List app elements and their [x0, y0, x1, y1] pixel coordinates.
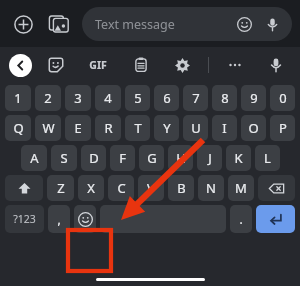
button[interactable]: GIF: [83, 52, 113, 78]
staticText: N: [206, 179, 216, 197]
staticText: E: [74, 119, 82, 137]
button[interactable]: H: [168, 145, 193, 171]
button[interactable]: X: [78, 175, 104, 201]
button[interactable]: Shift: [5, 175, 43, 201]
button[interactable]: Space: [100, 205, 226, 233]
staticText: 2: [44, 89, 52, 107]
button[interactable]: O: [241, 115, 266, 141]
button[interactable]: Backspace: [258, 175, 295, 201]
button[interactable]: 3: [65, 85, 91, 111]
button[interactable]: W: [35, 115, 61, 141]
staticText: V: [147, 179, 155, 197]
button[interactable]: U: [183, 115, 208, 141]
staticText: .: [239, 211, 243, 227]
staticText: 3: [74, 89, 82, 107]
button[interactable]: .: [230, 205, 252, 233]
button[interactable]: Emoji keyboard: [74, 205, 96, 233]
button[interactable]: 4: [95, 85, 121, 111]
button[interactable]: Q: [5, 115, 31, 141]
button[interactable]: B: [168, 175, 194, 201]
button[interactable]: ,: [48, 205, 70, 233]
button[interactable]: Y: [154, 115, 179, 141]
button[interactable]: E: [65, 115, 91, 141]
staticText: I: [222, 119, 227, 137]
staticText: O: [248, 119, 259, 137]
staticText: G: [147, 149, 157, 167]
staticText: 6: [163, 89, 171, 107]
staticText: C: [117, 179, 126, 197]
staticText: H: [176, 149, 186, 167]
button[interactable]: Emoji: [232, 12, 256, 36]
staticText: P: [279, 119, 287, 137]
staticText: Z: [57, 179, 65, 197]
button[interactable]: J: [197, 145, 222, 171]
button[interactable]: K: [226, 145, 251, 171]
staticText: Y: [163, 119, 171, 137]
button[interactable]: 7: [183, 85, 208, 111]
button[interactable]: R: [95, 115, 121, 141]
button[interactable]: Text message: [82, 7, 292, 41]
staticText: Text message: [95, 16, 175, 33]
staticText: 9: [250, 89, 258, 107]
button[interactable]: Enter: [256, 205, 295, 233]
button[interactable]: F: [110, 145, 135, 171]
staticText: F: [119, 149, 126, 167]
button[interactable]: 2: [35, 85, 61, 111]
staticText: K: [234, 149, 243, 167]
staticText: L: [264, 149, 271, 167]
button[interactable]: Stickers: [43, 52, 69, 78]
staticText: W: [42, 119, 55, 137]
button[interactable]: M: [228, 175, 254, 201]
button[interactable]: T: [125, 115, 150, 141]
button[interactable]: P: [270, 115, 295, 141]
button[interactable]: ?123: [5, 205, 44, 233]
button[interactable]: N: [198, 175, 224, 201]
button[interactable]: 6: [154, 85, 179, 111]
staticText: ?123: [13, 212, 36, 226]
staticText: 4: [104, 89, 112, 107]
button[interactable]: 9: [241, 85, 266, 111]
staticText: 1: [14, 89, 22, 107]
staticText: 5: [134, 89, 142, 107]
staticText: T: [134, 119, 142, 137]
button[interactable]: 5: [125, 85, 150, 111]
staticText: ,: [57, 211, 61, 227]
staticText: B: [177, 179, 186, 197]
button[interactable]: S: [51, 145, 77, 171]
staticText: R: [104, 119, 113, 137]
staticText: J: [208, 149, 212, 167]
staticText: 8: [221, 89, 229, 107]
staticText: GIF: [89, 58, 107, 72]
staticText: 7: [192, 89, 200, 107]
button[interactable]: Voice input: [260, 12, 284, 36]
button[interactable]: D: [81, 145, 106, 171]
staticText: X: [87, 179, 95, 197]
button[interactable]: C: [108, 175, 134, 201]
button[interactable]: Clipboard: [128, 52, 154, 78]
button[interactable]: Back: [9, 54, 32, 77]
button[interactable]: 0: [270, 85, 295, 111]
button[interactable]: 8: [212, 85, 237, 111]
button[interactable]: V: [138, 175, 164, 201]
button[interactable]: 1: [5, 85, 31, 111]
button[interactable]: L: [255, 145, 280, 171]
staticText: S: [60, 149, 68, 167]
staticText: U: [191, 119, 201, 137]
button[interactable]: Settings: [169, 52, 195, 78]
button[interactable]: Z: [47, 175, 74, 201]
staticText: 0: [279, 89, 287, 107]
staticText: A: [30, 149, 39, 167]
staticText: Q: [13, 119, 24, 137]
button[interactable]: A: [21, 145, 47, 171]
button[interactable]: I: [212, 115, 237, 141]
button[interactable]: More options: [222, 52, 248, 78]
staticText: D: [89, 149, 99, 167]
button[interactable]: G: [139, 145, 164, 171]
staticText: M: [235, 179, 247, 197]
button[interactable]: Gallery and camera: [44, 9, 74, 39]
button[interactable]: Voice typing: [263, 52, 289, 78]
button[interactable]: Add attachment: [8, 9, 38, 39]
